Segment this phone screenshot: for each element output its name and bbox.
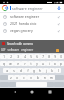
button[interactable]: m	[48, 75, 55, 80]
button[interactable]: p	[58, 61, 64, 66]
staticText: z	[10, 76, 12, 80]
button[interactable]: 7	[40, 54, 46, 59]
staticText: vegan grocery	[10, 28, 33, 33]
staticText: x	[16, 76, 18, 80]
staticText: k	[51, 69, 53, 73]
button[interactable]: vegan grocery	[0, 27, 64, 34]
button[interactable]: a	[3, 68, 10, 73]
staticText: 0	[60, 55, 62, 59]
staticText: 9	[54, 55, 56, 59]
staticText: 5	[30, 55, 32, 59]
button[interactable]: s	[10, 68, 17, 73]
button[interactable]: v	[27, 75, 34, 80]
staticText: 6	[36, 55, 38, 59]
button[interactable]: c	[20, 75, 27, 80]
button[interactable]: e	[14, 61, 21, 66]
button[interactable]: 2	[7, 54, 14, 59]
button[interactable]: t	[28, 61, 34, 66]
staticText: 4	[24, 55, 26, 59]
staticText: p	[60, 62, 62, 66]
button[interactable]: x	[14, 75, 20, 80]
button[interactable]: 6	[34, 54, 40, 59]
button[interactable]: 1	[0, 54, 7, 59]
staticText: y	[36, 62, 38, 66]
button[interactable]: Recents	[47, 89, 53, 95]
button[interactable]: d	[17, 68, 24, 73]
staticText: GIF software engineer	[1, 48, 34, 52]
staticText: b	[37, 76, 39, 80]
staticText: Search with camera	[7, 42, 33, 46]
staticText: e	[17, 62, 19, 66]
staticText: 7	[42, 55, 44, 59]
staticText: t	[30, 62, 32, 66]
button[interactable]: h	[37, 68, 43, 73]
staticText: 3	[17, 55, 19, 59]
button[interactable]: j	[43, 68, 49, 73]
button[interactable]: o	[52, 61, 58, 66]
staticText: a	[6, 69, 8, 73]
staticText: v	[30, 76, 32, 80]
button[interactable]: Search with camera	[0, 40, 64, 47]
button[interactable]: y	[34, 61, 40, 66]
button[interactable]: 3	[14, 54, 21, 59]
staticText: 8	[48, 55, 50, 59]
staticText: 2021 honda civic	[10, 21, 37, 26]
staticText: f	[27, 69, 29, 73]
staticText: q	[3, 62, 5, 66]
staticText: n	[44, 76, 46, 80]
staticText: 2	[10, 55, 12, 59]
button[interactable]: Home	[29, 89, 35, 95]
button[interactable]: r	[21, 61, 28, 66]
staticText: j	[46, 69, 47, 73]
staticText: i	[49, 62, 50, 66]
button[interactable]: software engineer	[0, 13, 64, 20]
button[interactable]: 8	[46, 54, 52, 59]
staticText: c	[23, 76, 25, 80]
button[interactable]: 2021 honda civic	[0, 20, 64, 27]
staticText: 1	[3, 55, 5, 59]
staticText: o	[54, 62, 56, 66]
button[interactable]: 4	[21, 54, 28, 59]
button[interactable]: g	[31, 68, 37, 73]
button[interactable]: l	[55, 68, 61, 73]
button[interactable]: n	[41, 75, 48, 80]
button[interactable]: i	[46, 61, 52, 66]
staticText: h	[39, 69, 41, 73]
button[interactable]: 9	[52, 54, 58, 59]
staticText: software engineer	[10, 14, 40, 19]
button[interactable]: k	[49, 68, 55, 73]
button[interactable]: Voice search	[56, 5, 62, 11]
button[interactable]: 5	[28, 54, 34, 59]
button[interactable]: f	[24, 68, 31, 73]
button[interactable]: w	[7, 61, 14, 66]
button[interactable]: q	[0, 61, 7, 66]
staticText: r	[24, 62, 26, 66]
button[interactable]: z	[8, 75, 14, 80]
button[interactable]: Google	[2, 5, 8, 11]
staticText: software engineer	[12, 6, 43, 11]
staticText: m	[50, 76, 53, 80]
button[interactable]: b	[34, 75, 41, 80]
button[interactable]: u	[40, 61, 46, 66]
staticText: l	[58, 69, 59, 73]
button[interactable]: 0	[58, 54, 64, 59]
staticText: g	[33, 69, 35, 73]
button[interactable]: Back	[12, 89, 18, 95]
staticText: s	[13, 69, 15, 73]
staticText: u	[42, 62, 44, 66]
staticText: d	[20, 69, 22, 73]
staticText: w	[9, 62, 12, 66]
